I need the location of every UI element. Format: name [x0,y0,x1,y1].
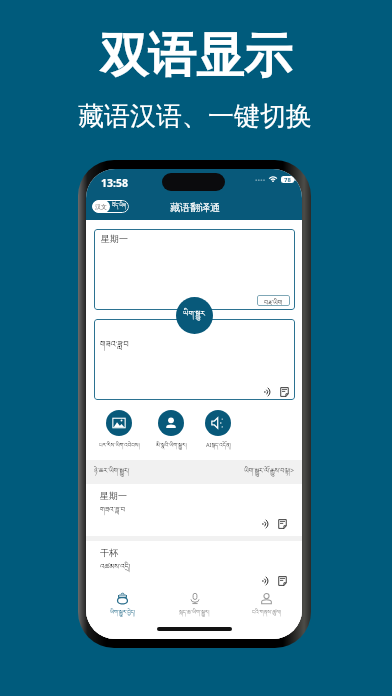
staticText: ཡིག་སྒྱུར [183,305,206,326]
button[interactable]: ཡིག་སྒྱུར [176,297,213,334]
button[interactable]: 干杯 [86,541,302,593]
staticText: 双语显示 [100,26,292,86]
button[interactable]: Translate [90,593,155,621]
staticText: 藏语翻译通 [170,201,220,214]
staticText: 干杯 [100,547,118,558]
staticText: བརྡ་ཡིག [264,295,283,306]
button[interactable]: 星期一 [86,484,302,536]
button[interactable]: པར་རིས་ཡིག་འབེབས། [87,410,151,454]
other: Play audio [264,388,273,396]
staticText: ངའི་གནས་ཚུལ། [252,606,282,621]
button[interactable]: བརྡ་ཡིག [257,295,290,306]
other: Play audio [262,577,271,585]
staticText: ཉེ་ཆར་ཡིག་སྒྱུར། [94,463,130,481]
staticText: 13:58 [101,176,128,190]
button[interactable]: མི་སྣའི་ཡིག་སྒྱུར། [139,410,203,454]
staticText: ཡིག་སྒྱུར་བྱེད། [110,606,136,621]
other: Play audio [262,520,271,528]
staticText: 藏语汉语、一键切换 [78,100,312,133]
button[interactable]: གཟའ་ཟླ་བ [94,319,295,400]
button[interactable]: AIསྐད་འདོན། [186,410,250,454]
button[interactable]: Profile [234,593,299,621]
button[interactable]: ཡིག་སྒྱུར་ལོ་རྒྱུས་བལྟ།> [244,463,294,481]
staticText: 汉文 [95,203,107,211]
other: Wifi [268,176,278,183]
other: Copy [278,519,287,529]
staticText: 星期一 [101,233,128,244]
staticText: མི་སྣའི་ཡིག་སྒྱུར། [156,439,187,454]
staticText: སྐད་ཆ་ཡིག་སྒྱུར། [179,606,210,621]
other: Translate [116,593,129,604]
staticText: ཡིག་སྒྱུར་ལོ་རྒྱུས་བལྟ།> [244,463,294,481]
button[interactable]: Voice [162,593,227,621]
staticText: གཟའ་ཟླ་བ [100,502,126,522]
other: Profile [261,593,272,604]
staticText: 星期一 [100,490,127,501]
staticText: 78 [284,176,291,183]
staticText: པར་རིས་ཡིག་འབེབས། [99,439,140,454]
other: Voice [190,593,200,604]
staticText: བོད་ཡིག [112,200,127,213]
staticText: AIསྐད་འདོན། [206,439,231,454]
other: Copy [280,387,289,397]
other: Copy [278,576,287,586]
staticText: འཚམས་འདྲི། [100,559,131,579]
button[interactable]: 星期一 [94,229,295,310]
button[interactable]: 汉文 [92,200,129,213]
staticText: གཟའ་ཟླ་བ [100,335,129,358]
